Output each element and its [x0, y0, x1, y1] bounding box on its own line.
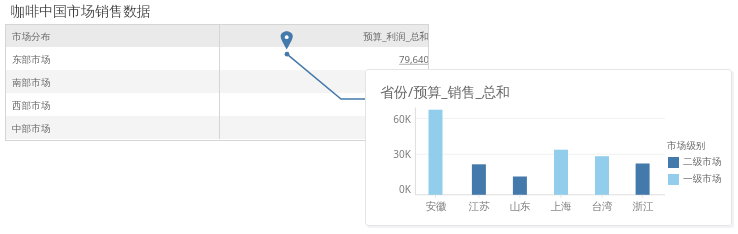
staticText: 二级市场	[683, 156, 722, 168]
other: Map marker callout	[0, 0, 738, 234]
button[interactable]: 东部市场	[5, 47, 429, 70]
staticText: 安徽	[421, 200, 451, 213]
staticText: 30K	[387, 147, 411, 161]
staticText: 江苏	[464, 200, 494, 213]
staticText: 咖啡中国市场销售数据	[11, 3, 151, 21]
staticText: 预算_利润_总和	[363, 30, 430, 43]
button[interactable]: 西部市场	[5, 93, 429, 116]
button[interactable]: 南部市场	[5, 70, 429, 93]
staticText: 市场分布	[12, 31, 51, 43]
staticText: 西部市场	[12, 100, 51, 112]
staticText: 一级市场	[683, 173, 722, 185]
button[interactable]: 市场分布	[5, 24, 429, 47]
staticText: 0K	[387, 182, 411, 196]
staticText: 省份/预算_销售_总和	[380, 82, 510, 101]
staticText: 东部市场	[12, 54, 51, 66]
button[interactable]: 中部市场	[5, 116, 429, 139]
staticText: 台湾	[587, 200, 617, 213]
staticText: 市场级别	[667, 140, 706, 152]
button[interactable]: 一级市场	[668, 173, 722, 185]
staticText: 南部市场	[12, 77, 51, 89]
staticText: 浙江	[628, 200, 658, 213]
staticText: 60K	[387, 112, 411, 126]
staticText: 79,640	[399, 53, 430, 66]
staticText: 上海	[546, 200, 576, 213]
staticText: 中部市场	[12, 123, 51, 135]
button[interactable]: 二级市场	[668, 156, 722, 168]
staticText: 山东	[505, 200, 535, 213]
